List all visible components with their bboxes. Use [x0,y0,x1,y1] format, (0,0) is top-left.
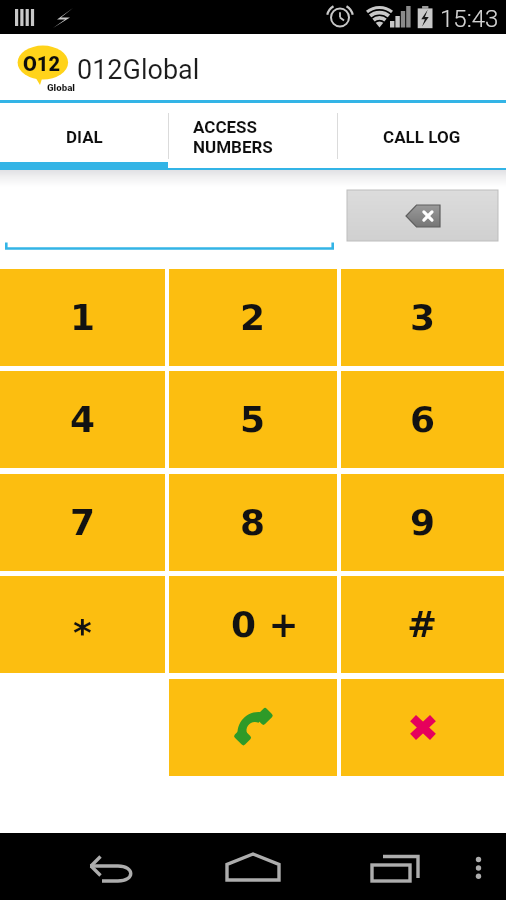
button[interactable]: CALL LOG [338,103,506,170]
staticText: NUMBERS [193,137,273,157]
staticText: 2 [240,297,266,339]
button[interactable]: 3 [341,269,504,366]
button[interactable]: 9 [341,474,504,571]
button[interactable]: * [0,576,165,673]
staticText: 15:43 [440,5,499,33]
staticText: 3 [410,297,436,339]
staticText: 012Global [77,54,200,86]
staticText: Global [47,82,75,93]
button[interactable]: 8 [169,474,337,571]
staticText: * [73,612,92,654]
staticText: 7 [70,502,96,544]
button[interactable]: Backspace [347,190,498,241]
button[interactable]: DIAL [0,103,168,170]
staticText: 4 [70,399,96,441]
staticText: CALL LOG [383,127,461,147]
button[interactable]: 5 [169,371,337,468]
staticText: ACCESS [193,117,257,137]
staticText: 5 [240,399,266,441]
button[interactable]: # [341,576,504,673]
staticText: 9 [410,502,436,544]
button[interactable]: Back [0,833,180,900]
staticText: 0 + [231,604,299,646]
button[interactable]: ACCESS [169,103,337,170]
button[interactable]: Call [169,679,337,776]
button[interactable]: 4 [0,371,165,468]
button[interactable]: 2 [169,269,337,366]
staticText: DIAL [66,127,103,147]
button[interactable]: 7 [0,474,165,571]
staticText: 8 [240,502,266,544]
staticText: # [407,604,438,646]
staticText: 1 [70,297,96,339]
staticText: O12 [23,52,60,75]
staticText: 6 [410,399,436,441]
button[interactable]: 1 [0,269,165,366]
button[interactable]: Recent apps [330,833,440,900]
button[interactable]: 0 + [169,576,337,673]
button[interactable]: End call [341,679,504,776]
button[interactable]: Home [180,833,330,900]
button[interactable]: More options [446,833,506,900]
button[interactable]: 6 [341,371,504,468]
